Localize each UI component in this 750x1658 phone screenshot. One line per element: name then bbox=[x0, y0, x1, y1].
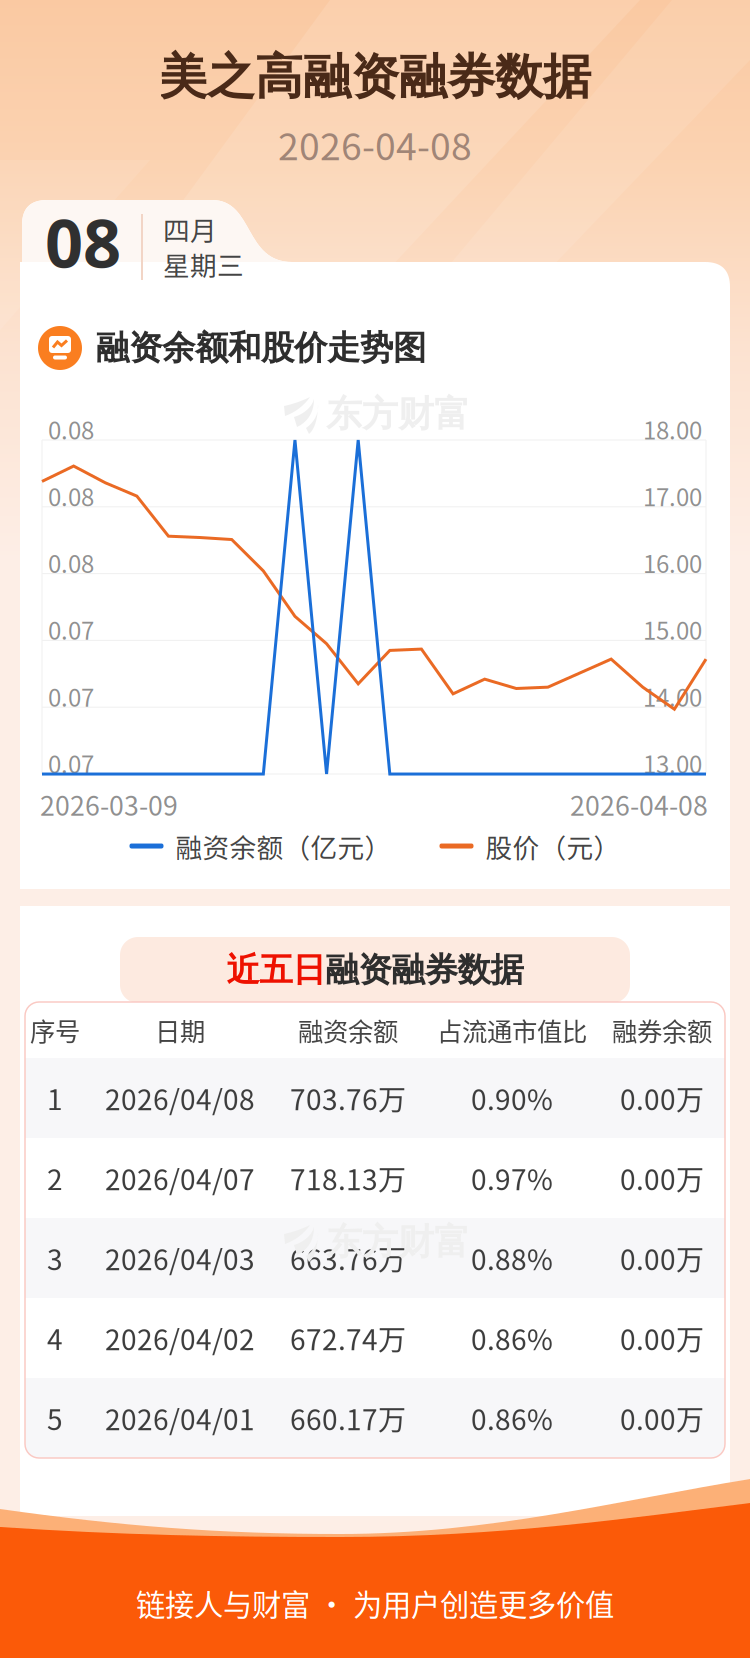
staticText: 2026/04/07 bbox=[105, 1158, 255, 1198]
staticText: 5 bbox=[47, 1398, 63, 1438]
staticText: 美之高融资融券数据 bbox=[159, 47, 591, 107]
staticText: 663.76万 bbox=[290, 1238, 406, 1278]
staticText: 融资余额 bbox=[298, 1012, 398, 1048]
staticText: 18.00 bbox=[643, 412, 702, 446]
staticText: 0.08 bbox=[48, 412, 94, 446]
staticText: 08 bbox=[45, 197, 121, 287]
staticText: 0.90% bbox=[471, 1078, 553, 1118]
staticText: 2026/04/01 bbox=[105, 1398, 255, 1438]
staticText: 3 bbox=[47, 1238, 63, 1278]
staticText: 0.88% bbox=[471, 1238, 553, 1278]
staticText: 703.76万 bbox=[290, 1078, 406, 1118]
staticText: 0.07 bbox=[48, 679, 94, 714]
staticText: 序号 bbox=[30, 1012, 80, 1048]
staticText: 0.00万 bbox=[620, 1238, 704, 1278]
staticText: 股价（元） bbox=[485, 827, 620, 865]
staticText: 星期三 bbox=[163, 245, 244, 283]
staticText: 0.00万 bbox=[620, 1158, 704, 1198]
staticText: 672.74万 bbox=[290, 1318, 406, 1358]
staticText: 2026/04/02 bbox=[105, 1318, 255, 1358]
staticText: 17.00 bbox=[643, 478, 702, 513]
staticText: 13.00 bbox=[643, 746, 702, 780]
staticText: 占流通市值比 bbox=[437, 1012, 587, 1048]
staticText: 近五日 bbox=[226, 949, 325, 991]
staticText: 0.86% bbox=[471, 1318, 553, 1358]
staticText: 0.00万 bbox=[620, 1318, 704, 1358]
staticText: 14.00 bbox=[643, 679, 702, 714]
staticText: 2026-04-08 bbox=[278, 117, 472, 171]
staticText: 2026/04/03 bbox=[105, 1238, 255, 1278]
staticText: 2026/04/08 bbox=[105, 1078, 255, 1118]
staticText: 0.08 bbox=[48, 478, 94, 513]
staticText: 2026-03-09 bbox=[40, 785, 178, 823]
staticText: 16.00 bbox=[643, 545, 702, 580]
staticText: 2 bbox=[47, 1158, 63, 1198]
staticText: 15.00 bbox=[643, 612, 702, 647]
staticText: 0.86% bbox=[471, 1398, 553, 1438]
staticText: 融券余额 bbox=[612, 1012, 712, 1048]
staticText: 0.97% bbox=[471, 1158, 553, 1198]
staticText: 4 bbox=[47, 1318, 63, 1358]
staticText: 链接人与财富 · 为用户创造更多价值 bbox=[136, 1582, 614, 1624]
staticText: 660.17万 bbox=[290, 1398, 406, 1438]
staticText: 2026-04-08 bbox=[570, 785, 708, 823]
staticText: 融资余额（亿元） bbox=[175, 827, 391, 865]
staticText: 东方财富 bbox=[326, 391, 470, 437]
staticText: 0.00万 bbox=[620, 1398, 704, 1438]
staticText: 融资融券数据 bbox=[325, 949, 523, 991]
staticText: 0.07 bbox=[48, 612, 94, 647]
staticText: 0.08 bbox=[48, 545, 94, 580]
staticText: 东方财富 bbox=[326, 1219, 470, 1265]
staticText: 0.00万 bbox=[620, 1078, 704, 1118]
staticText: 0.07 bbox=[48, 746, 94, 780]
staticText: 718.13万 bbox=[290, 1158, 406, 1198]
staticText: 1 bbox=[47, 1078, 63, 1118]
staticText: 融资余额和股价走势图 bbox=[96, 327, 426, 369]
staticText: 四月 bbox=[163, 210, 217, 248]
staticText: 日期 bbox=[155, 1012, 205, 1048]
